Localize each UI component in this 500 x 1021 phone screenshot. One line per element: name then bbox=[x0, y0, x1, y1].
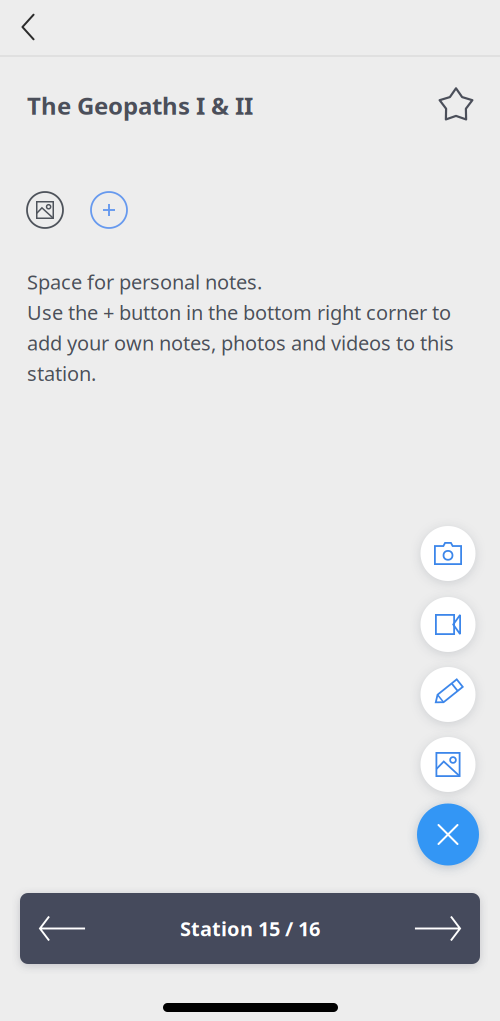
staticText: Station 15 / 16 bbox=[180, 915, 320, 942]
button[interactable]: Back bbox=[2, 1, 54, 53]
button[interactable]: Previous station bbox=[20, 893, 105, 963]
button[interactable]: Close bbox=[417, 803, 479, 865]
button[interactable]: Choose image bbox=[420, 737, 475, 792]
button[interactable]: Take photo bbox=[420, 526, 475, 581]
button[interactable]: Photos bbox=[27, 192, 63, 228]
button[interactable]: Next station bbox=[395, 893, 480, 963]
button[interactable]: Favourite bbox=[432, 81, 480, 129]
staticText: Space for personal notes. Use the + butt… bbox=[27, 268, 454, 387]
button[interactable]: Add bbox=[91, 192, 127, 228]
staticText: The Geopaths I & II bbox=[27, 89, 253, 122]
button[interactable]: Record video bbox=[420, 597, 475, 652]
button[interactable]: Draw bbox=[420, 667, 475, 722]
